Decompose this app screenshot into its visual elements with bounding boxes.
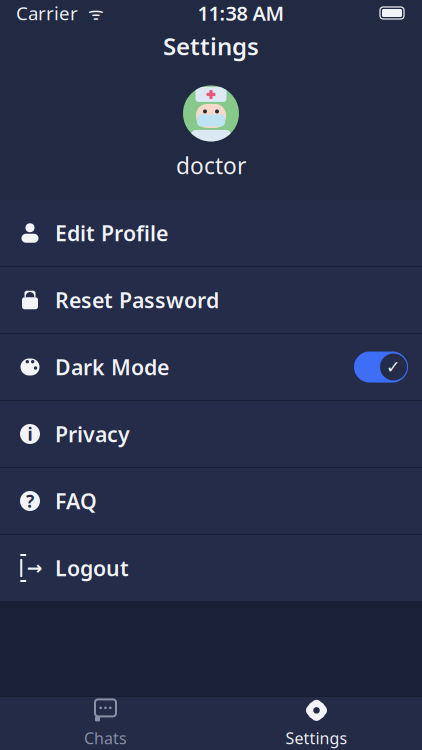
button[interactable]: Dark Mode toggle — [354, 351, 408, 382]
button[interactable]: Reset Password — [0, 267, 422, 333]
button[interactable]: Chats — [0, 699, 211, 748]
staticText: Dark Mode — [55, 353, 169, 381]
staticText: Settings — [285, 727, 347, 749]
staticText: ? — [26, 489, 34, 512]
button[interactable]: Dark Mode — [0, 334, 422, 400]
staticText: Chats — [84, 727, 127, 749]
staticText: Settings — [163, 30, 259, 62]
staticText: → — [27, 557, 43, 579]
staticText: 11:38 AM — [197, 0, 284, 26]
staticText: Logout — [55, 554, 129, 582]
staticText: ✓ — [386, 357, 401, 377]
staticText: Reset Password — [55, 286, 219, 314]
staticText: ᯤ — [78, 1, 104, 24]
staticText: Edit Profile — [55, 219, 168, 247]
button[interactable]: Edit Profile — [0, 200, 422, 266]
button[interactable]: i — [0, 401, 422, 467]
button[interactable]: Settings — [211, 699, 422, 748]
staticText: i — [27, 422, 32, 445]
staticText: Privacy — [55, 420, 130, 448]
staticText: doctor — [176, 150, 246, 180]
staticText: FAQ — [55, 487, 97, 515]
button[interactable]: → — [0, 535, 422, 601]
button[interactable]: ? — [0, 468, 422, 534]
staticText: Carrier — [16, 1, 78, 25]
